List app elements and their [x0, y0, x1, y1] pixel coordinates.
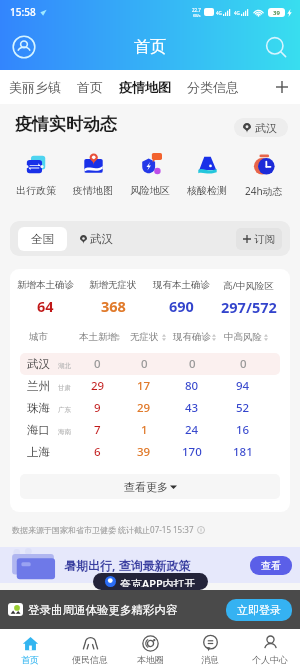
staticText: 17 [137, 378, 151, 394]
button[interactable]: 出行政策 [10, 153, 62, 197]
button[interactable]: 本土新增 [74, 321, 121, 353]
staticText: 武汉 [255, 121, 277, 135]
staticText: 暑期出行, 查询最新政策 [64, 557, 191, 573]
button[interactable]: 兰州 [20, 375, 280, 397]
button[interactable]: 上海 [20, 441, 280, 463]
staticText: 便民信息 [72, 654, 108, 665]
button[interactable]: 立即登录 [226, 599, 292, 621]
staticText: 湖北 [58, 362, 71, 370]
staticText: 新增本土确诊 [17, 279, 74, 291]
button[interactable]: 武汉 [234, 118, 288, 137]
staticText: 4G [234, 10, 240, 16]
staticText: 兰州 [27, 379, 50, 393]
button[interactable]: 武汉 [20, 353, 280, 375]
button[interactable]: 核酸检测 [181, 153, 233, 197]
staticText: 首页 [134, 37, 166, 57]
staticText: 查看更多 [124, 480, 168, 494]
staticText: 0 [94, 356, 101, 372]
button[interactable]: 本地圈 [120, 629, 180, 669]
staticText: 6 [94, 444, 101, 460]
staticText: 16 [236, 422, 250, 438]
button[interactable]: 中高风险 [217, 321, 269, 353]
staticText: 80 [185, 378, 199, 394]
staticText: 24 [185, 422, 199, 438]
button[interactable]: 武汉 [76, 227, 117, 251]
button[interactable]: 24h动态 [238, 153, 290, 198]
button[interactable]: Search [264, 35, 288, 59]
staticText: 武汉 [90, 232, 113, 246]
staticText: 查看 [261, 559, 281, 572]
staticText: 广东 [58, 406, 71, 414]
staticText: 170 [182, 444, 202, 460]
staticText: 0 [189, 356, 196, 372]
staticText: 1 [141, 422, 148, 438]
staticText: 368 [101, 296, 126, 316]
staticText: 94 [236, 378, 250, 394]
staticText: 个人中心 [252, 654, 288, 665]
staticText: 本地圈 [137, 654, 164, 665]
staticText: 0 [141, 356, 148, 372]
staticText: 首页 [77, 79, 103, 95]
staticText: 高/中风险区 [223, 279, 275, 292]
staticText: 首页 [21, 654, 39, 665]
button[interactable]: 无症状 [121, 321, 167, 353]
button[interactable]: 美丽乡镇 [1, 70, 69, 104]
staticText: 22.7 [192, 7, 201, 13]
staticText: 52 [236, 400, 250, 416]
staticText: 9 [94, 400, 101, 416]
staticText: 疫情地图 [73, 184, 113, 197]
staticText: KB/s [193, 13, 201, 18]
staticText: 疫情实时动态 [15, 114, 117, 135]
staticText: 39 [273, 9, 280, 17]
button[interactable]: 现有确诊 [167, 321, 217, 353]
button[interactable]: 首页 [69, 70, 111, 104]
staticText: 4G [216, 10, 222, 16]
staticText: 甘肃 [58, 384, 71, 392]
staticText: 本土新增 [79, 331, 117, 343]
staticText: 181 [233, 444, 253, 460]
button[interactable]: 珠海 [20, 397, 280, 419]
button[interactable]: 分类信息 [179, 70, 247, 104]
button[interactable]: 消息 [180, 629, 240, 669]
button[interactable]: 个人中心 [240, 629, 300, 669]
button[interactable]: 疫情地图 [111, 70, 179, 104]
button[interactable]: 查看更多 [20, 474, 280, 499]
button[interactable]: 风险地区 [124, 153, 176, 197]
staticText: 武汉 [27, 357, 50, 371]
staticText: 39 [137, 444, 151, 460]
staticText: 15:58 [10, 5, 36, 19]
button[interactable]: 全国 [18, 227, 67, 251]
staticText: 订阅 [254, 233, 275, 246]
staticText: 全国 [31, 232, 54, 246]
staticText: 城市 [29, 331, 48, 343]
staticText: 珠海 [27, 401, 50, 415]
staticText: 7 [94, 422, 101, 438]
staticText: 297/572 [221, 297, 277, 317]
button[interactable]: 首页 [0, 629, 60, 669]
staticText: 上海 [27, 445, 50, 459]
button[interactable]: Profile [12, 35, 36, 59]
staticText: 64 [37, 296, 54, 316]
staticText: 690 [169, 296, 194, 316]
button[interactable]: Add tab [268, 73, 296, 101]
staticText: 核酸检测 [187, 184, 227, 197]
button[interactable]: 夸克APP内打开 [93, 573, 208, 590]
staticText: 风险地区 [130, 184, 170, 197]
button[interactable]: 便民信息 [60, 629, 120, 669]
button[interactable]: 疫情地图 [67, 153, 119, 197]
staticText: 海口 [27, 423, 50, 437]
staticText: 现有本土确诊 [153, 279, 210, 291]
staticText: 无症状 [130, 331, 159, 343]
staticText: 分类信息 [187, 79, 239, 95]
button[interactable]: 暑期出行, 查询最新政策 [0, 547, 300, 583]
staticText: 新增无症状 [89, 279, 137, 291]
staticText: 0 [240, 356, 247, 372]
button[interactable]: 订阅 [236, 228, 282, 250]
staticText: 29 [91, 378, 105, 394]
staticText: 美丽乡镇 [9, 79, 61, 95]
staticText: 消息 [201, 654, 219, 665]
button[interactable]: 海口 [20, 419, 280, 441]
button[interactable]: 查看 [250, 556, 292, 575]
staticText: 29 [137, 400, 151, 416]
staticText: 出行政策 [16, 184, 56, 197]
